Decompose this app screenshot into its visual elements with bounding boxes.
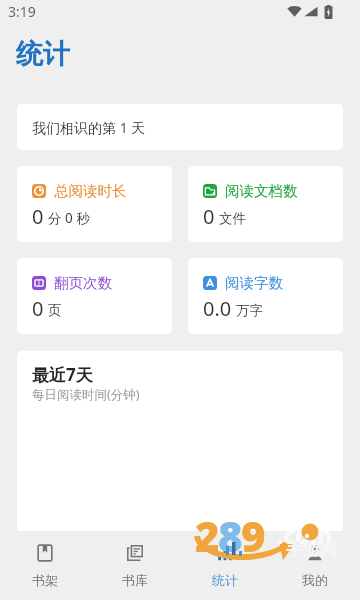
staticText: 万字 — [236, 302, 263, 319]
button[interactable]: 统计 — [180, 531, 270, 600]
button[interactable]: 我们相识的第 1 天 — [17, 104, 343, 150]
staticText: 分 0 秒 — [48, 209, 90, 227]
staticText: 总阅读时长 — [54, 182, 127, 200]
staticText: 统计 — [212, 572, 238, 588]
staticText: 我的 — [302, 572, 328, 588]
staticText: 0 — [32, 203, 44, 230]
staticText: 每日阅读时间(分钟) — [32, 386, 140, 403]
staticText: 8 — [218, 507, 243, 564]
staticText: 0 — [203, 203, 215, 230]
staticText: 我们相识的第 1 天 — [32, 118, 146, 137]
staticText: 9 — [241, 507, 266, 564]
staticText: 统计 — [16, 37, 70, 71]
staticText: .com — [277, 519, 333, 550]
staticText: 书库 — [122, 572, 148, 588]
staticText: 手游网 — [286, 539, 337, 560]
staticText: 页 — [48, 302, 62, 319]
button[interactable]: 翻页次数 — [17, 258, 172, 334]
staticText: 阅读文档数 — [225, 182, 298, 200]
staticText: 最近7天 — [32, 363, 93, 386]
staticText: 3:19 — [8, 2, 36, 21]
staticText: 0 — [32, 295, 44, 322]
button[interactable]: 书库 — [90, 531, 180, 600]
staticText: 2 — [195, 507, 220, 564]
staticText: 文件 — [219, 210, 246, 227]
button[interactable]: 总阅读时长 — [17, 166, 172, 242]
staticText: 阅读字数 — [225, 274, 283, 292]
staticText: 0.0 — [203, 295, 232, 322]
button[interactable]: 我的 — [270, 531, 360, 600]
button[interactable]: 阅读字数 — [188, 258, 343, 334]
staticText: 翻页次数 — [54, 274, 112, 292]
button[interactable]: 阅读文档数 — [188, 166, 343, 242]
staticText: 书架 — [32, 572, 58, 588]
button[interactable]: 书架 — [0, 531, 90, 600]
